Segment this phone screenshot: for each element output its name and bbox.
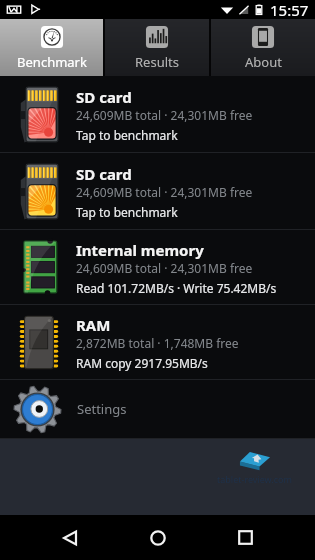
staticText: SD card bbox=[76, 87, 132, 107]
button[interactable]: Benchmark bbox=[0, 19, 103, 76]
staticText: Read 101.72MB/s · Write 75.42MB/s bbox=[76, 280, 277, 296]
staticText: RAM copy 2917.95MB/s bbox=[76, 355, 208, 371]
staticText: Results bbox=[135, 53, 179, 71]
staticText: SD card bbox=[76, 164, 132, 184]
button[interactable]: Results bbox=[105, 19, 209, 76]
button[interactable]: SD card bbox=[0, 76, 315, 152]
button[interactable]: Back bbox=[47, 515, 93, 560]
button[interactable]: About bbox=[211, 19, 315, 76]
staticText: Settings bbox=[77, 400, 127, 418]
staticText: Internal memory bbox=[76, 240, 204, 260]
staticText: tablet-review.com bbox=[217, 473, 292, 485]
staticText: Benchmark bbox=[17, 53, 87, 71]
staticText: 15:57 bbox=[270, 0, 309, 19]
staticText: Tap to benchmark bbox=[76, 127, 178, 143]
button[interactable]: RAM bbox=[0, 305, 315, 379]
button[interactable]: SD card bbox=[0, 153, 315, 229]
staticText: About bbox=[245, 53, 282, 71]
button[interactable]: Settings bbox=[0, 380, 315, 438]
button[interactable]: Internal memory bbox=[0, 230, 315, 304]
staticText: 24,609MB total · 24,301MB free bbox=[76, 107, 253, 123]
staticText: RAM bbox=[76, 315, 111, 335]
button[interactable]: Home bbox=[135, 515, 181, 560]
staticText: 24,609MB total · 24,301MB free bbox=[76, 260, 253, 276]
button[interactable]: Recents bbox=[222, 515, 268, 560]
staticText: 24,609MB total · 24,301MB free bbox=[76, 184, 253, 200]
staticText: Tap to benchmark bbox=[76, 204, 178, 220]
staticText: 2,872MB total · 1,748MB free bbox=[76, 335, 239, 351]
